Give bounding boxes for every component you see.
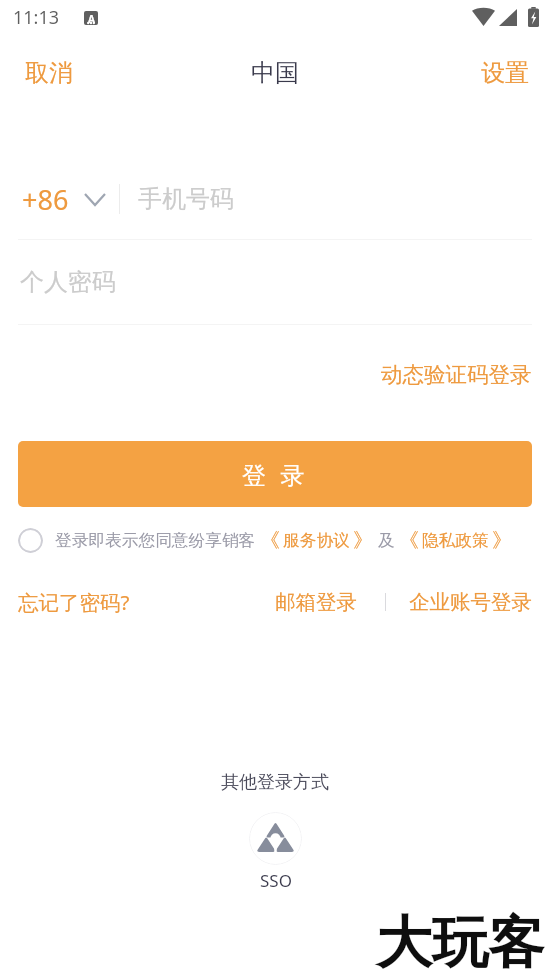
staticText: 登录即表示您同意纷享销客 — [55, 530, 256, 551]
staticText: 中国 — [251, 58, 299, 88]
staticText: +86 — [22, 181, 69, 218]
staticText: 动态验证码登录 — [381, 361, 532, 388]
staticText: 个人密码 — [20, 267, 116, 297]
button[interactable]: 取消 — [0, 48, 98, 98]
staticText: 服务协议 — [283, 530, 350, 551]
staticText: 邮箱登录 — [275, 589, 357, 615]
staticText: 手机号码 — [138, 184, 234, 214]
staticText: SSO — [260, 869, 292, 892]
staticText: 隐私政策 — [422, 530, 489, 551]
button[interactable]: 同意协议 — [18, 528, 43, 553]
button[interactable]: 邮箱登录 — [275, 589, 357, 615]
staticText: 及 — [378, 530, 395, 551]
staticText: 其他登录方式 — [221, 771, 329, 794]
button[interactable]: 设置 — [460, 48, 550, 98]
staticText: 《 — [399, 528, 419, 553]
button[interactable]: 企业账号登录 — [409, 589, 532, 615]
staticText: 》 — [492, 528, 512, 553]
button[interactable]: 忘记了密码? — [18, 588, 130, 616]
staticText: 设置 — [481, 58, 529, 88]
staticText: 《 — [260, 528, 280, 553]
button[interactable]: SSO — [249, 812, 302, 892]
staticText: 取消 — [25, 58, 73, 88]
button[interactable]: +86 — [22, 181, 119, 218]
staticText: A — [88, 12, 95, 25]
staticText: 企业账号登录 — [409, 589, 532, 615]
staticText: 忘记了密码? — [18, 588, 130, 616]
staticText: 大玩客 — [376, 908, 544, 979]
button[interactable]: 动态验证码登录 — [363, 355, 550, 394]
staticText: 》 — [353, 528, 373, 553]
staticText: 登 录 — [242, 458, 309, 491]
staticText: 11:13 — [13, 5, 60, 30]
button[interactable]: 登 录 — [18, 441, 532, 507]
